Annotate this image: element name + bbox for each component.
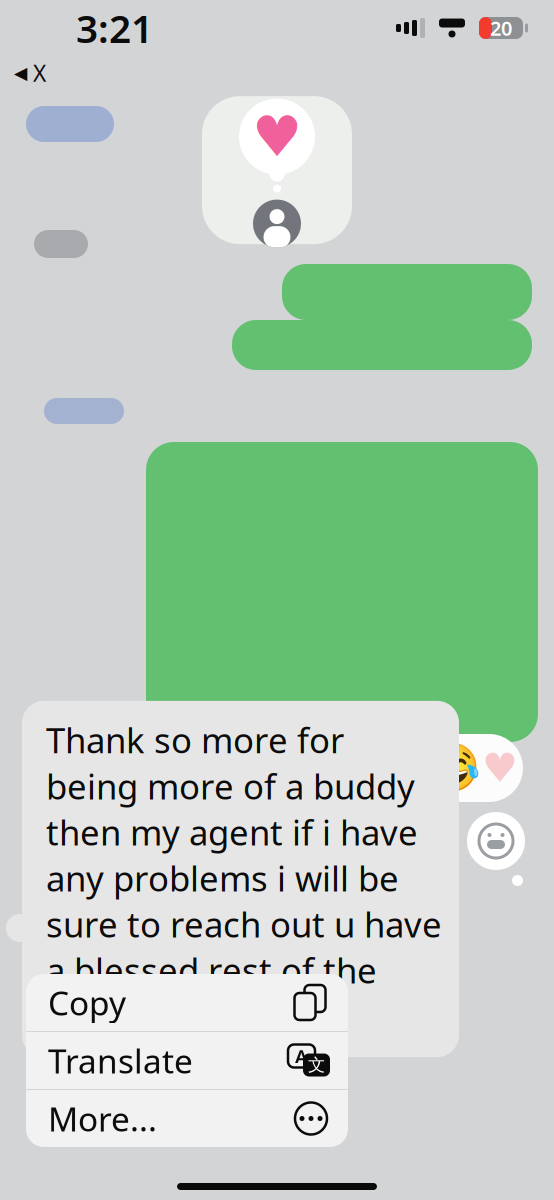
button[interactable]: Copy: [26, 974, 348, 1031]
staticText: Translate: [48, 1038, 193, 1083]
staticText: ♥: [482, 745, 518, 791]
staticText: 20: [490, 15, 512, 41]
staticText: More...: [48, 1096, 157, 1141]
button[interactable]: Question mark reaction: [370, 740, 414, 796]
button[interactable]: More reactions: [489, 740, 511, 796]
staticText: 😂: [421, 741, 481, 795]
staticText: ◀: [14, 63, 27, 83]
staticText: X: [33, 58, 46, 88]
staticText: ?: [380, 736, 403, 800]
staticText: Copy: [48, 980, 126, 1025]
staticText: ♥: [252, 105, 302, 168]
button[interactable]: Laughing reaction: [429, 740, 473, 796]
button[interactable]: Thumbs down reaction: [191, 740, 235, 796]
staticText: Thank so more for being more of a buddy …: [46, 717, 442, 1039]
button[interactable]: Love reaction, selected: [64, 742, 116, 794]
button[interactable]: Haha reaction: [251, 740, 295, 796]
button[interactable]: Exclamation reaction: [310, 740, 354, 796]
staticText: ♥: [72, 745, 108, 791]
button[interactable]: Back to X: [0, 56, 46, 90]
staticText: 👎: [185, 742, 241, 794]
staticText: 文: [308, 1054, 325, 1076]
staticText: 👍: [126, 742, 182, 794]
button[interactable]: Translate: [26, 1032, 348, 1089]
staticText: HA: [255, 739, 290, 770]
button[interactable]: Thumbs up reaction: [132, 740, 176, 796]
button[interactable]: More...: [26, 1090, 348, 1147]
staticText: 3:21: [76, 2, 153, 54]
staticText: ‼: [319, 738, 345, 798]
staticText: HA: [255, 765, 290, 797]
staticText: A: [295, 1044, 308, 1068]
